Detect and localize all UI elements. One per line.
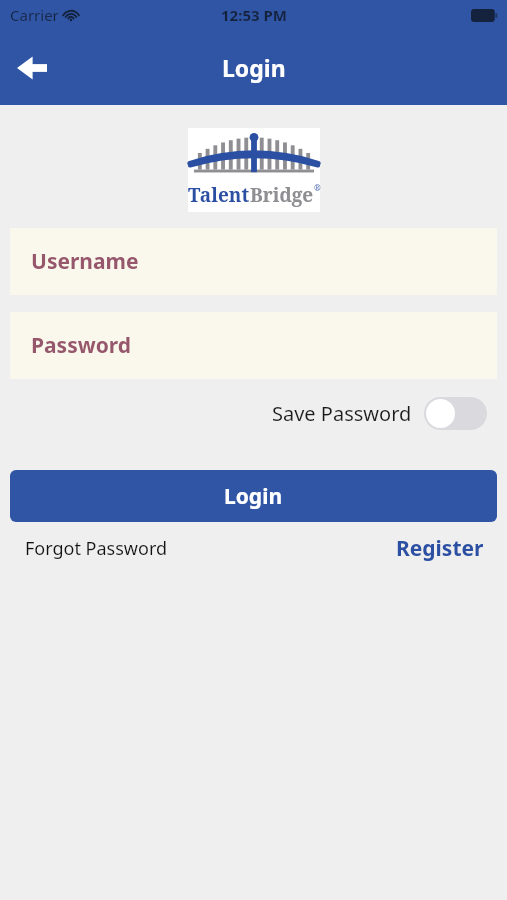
button[interactable]: Password xyxy=(10,312,497,379)
staticText: Bridge xyxy=(250,182,314,208)
staticText: Carrier xyxy=(10,5,59,25)
staticText: Login xyxy=(222,52,286,83)
staticText: Password xyxy=(31,331,132,360)
button[interactable]: Back xyxy=(8,44,56,92)
button[interactable]: Forgot Password xyxy=(25,536,168,561)
staticText: Login xyxy=(224,482,283,511)
staticText: Save Password xyxy=(272,400,412,427)
staticText: Register xyxy=(396,534,484,563)
staticText: 12:53 PM xyxy=(221,5,287,25)
staticText: ® xyxy=(314,182,320,193)
button[interactable]: Register xyxy=(396,534,484,563)
staticText: Talent xyxy=(188,182,250,208)
button[interactable]: Save Password toggle, off xyxy=(424,397,487,430)
button[interactable]: Login xyxy=(10,470,497,522)
button[interactable]: Username xyxy=(10,228,497,295)
staticText: Username xyxy=(31,247,139,276)
staticText: Forgot Password xyxy=(25,536,168,561)
